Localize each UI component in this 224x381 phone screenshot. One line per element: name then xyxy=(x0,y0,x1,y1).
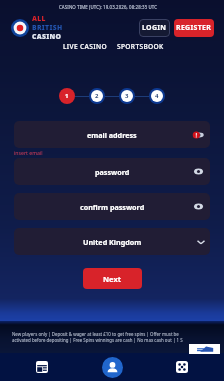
staticText: United Kingdom xyxy=(83,237,142,247)
staticText: LOGIN xyxy=(142,23,167,33)
button[interactable]: SPORTSBOOK xyxy=(117,40,164,53)
staticText: 3 xyxy=(125,92,129,100)
staticText: 2 xyxy=(95,92,99,100)
button[interactable]: confirm password xyxy=(14,193,210,220)
staticText: New players only | Deposit & wager at le… xyxy=(12,331,179,337)
staticText: CASINO TIME (UTC): 19.03.2026, 08:28:35 … xyxy=(59,4,158,10)
button[interactable]: LOGIN xyxy=(139,19,170,37)
staticText: LIVE CASINO xyxy=(63,42,107,51)
button[interactable]: 1 xyxy=(59,88,75,104)
staticText: CASINO xyxy=(32,32,62,41)
button[interactable]: Account xyxy=(77,353,147,381)
staticText: 4 xyxy=(155,92,159,100)
staticText: ALL xyxy=(32,14,46,23)
button[interactable]: 3 xyxy=(119,88,135,104)
staticText: Next xyxy=(103,274,122,284)
button[interactable]: Next xyxy=(83,268,142,289)
button[interactable]: Lobby xyxy=(7,353,77,381)
staticText: BRITISH xyxy=(32,23,63,32)
staticText: password xyxy=(95,167,130,177)
button[interactable]: 4 xyxy=(149,88,165,104)
button[interactable]: password xyxy=(14,158,210,185)
staticText: SPORTSBOOK xyxy=(117,42,164,51)
staticText: email address xyxy=(87,130,137,140)
staticText: 1 xyxy=(65,92,69,100)
button[interactable]: 2 xyxy=(89,88,105,104)
button[interactable]: REGISTER xyxy=(174,19,214,37)
button[interactable]: United Kingdom xyxy=(14,228,210,255)
button[interactable]: email address xyxy=(14,121,210,148)
staticText: activated before depositing | Free Spins… xyxy=(12,337,183,343)
staticText: confirm password xyxy=(80,202,145,212)
button[interactable]: Games xyxy=(147,353,217,381)
staticText: insert email xyxy=(14,149,43,156)
staticText: REGISTER xyxy=(176,23,212,33)
button[interactable]: LIVE CASINO xyxy=(63,40,107,53)
